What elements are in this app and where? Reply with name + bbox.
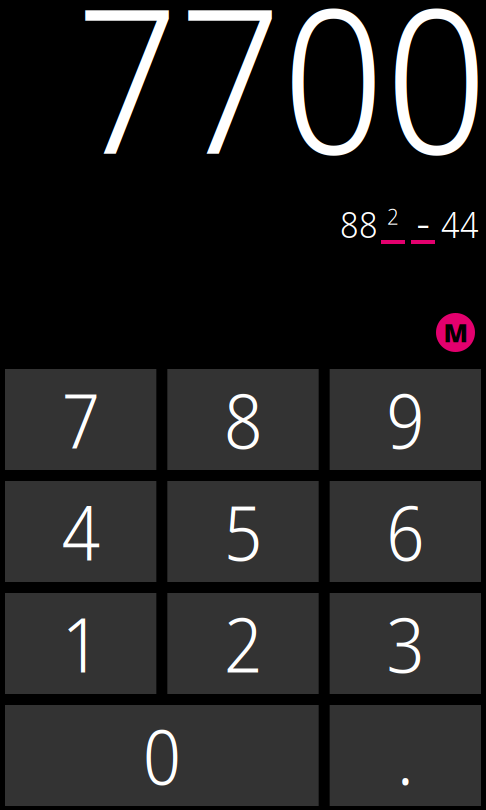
button[interactable]: 1 xyxy=(5,593,156,694)
staticText: 3 xyxy=(386,593,424,694)
staticText: 88 xyxy=(340,199,378,248)
button[interactable]: 5 xyxy=(167,481,319,582)
staticText: - xyxy=(416,192,429,252)
button[interactable]: . xyxy=(330,705,481,806)
staticText: 5 xyxy=(224,481,262,582)
staticText: 0 xyxy=(143,705,181,806)
staticText: 2 xyxy=(387,201,399,231)
button[interactable]: 3 xyxy=(330,593,481,694)
staticText: 44 xyxy=(441,199,479,248)
button[interactable]: 6 xyxy=(330,481,481,582)
staticText: 8 xyxy=(224,369,262,470)
staticText: M xyxy=(443,315,467,350)
button[interactable]: 0 xyxy=(5,705,319,806)
button[interactable]: 2 xyxy=(167,593,319,694)
staticText: 1 xyxy=(62,593,100,694)
button[interactable]: Squared xyxy=(381,209,405,244)
staticText: 7 xyxy=(62,369,100,470)
staticText: 7700 xyxy=(76,0,486,212)
staticText: 9 xyxy=(386,369,424,470)
staticText: 6 xyxy=(386,481,424,582)
staticText: 2 xyxy=(224,593,262,694)
button[interactable]: 4 xyxy=(5,481,156,582)
button[interactable]: 8 xyxy=(167,369,319,470)
button[interactable]: Memory xyxy=(436,313,475,352)
button[interactable]: 7 xyxy=(5,369,156,470)
staticText: 4 xyxy=(62,481,100,582)
staticText: . xyxy=(397,705,414,806)
button[interactable]: Minus xyxy=(411,209,435,244)
button[interactable]: 9 xyxy=(330,369,481,470)
